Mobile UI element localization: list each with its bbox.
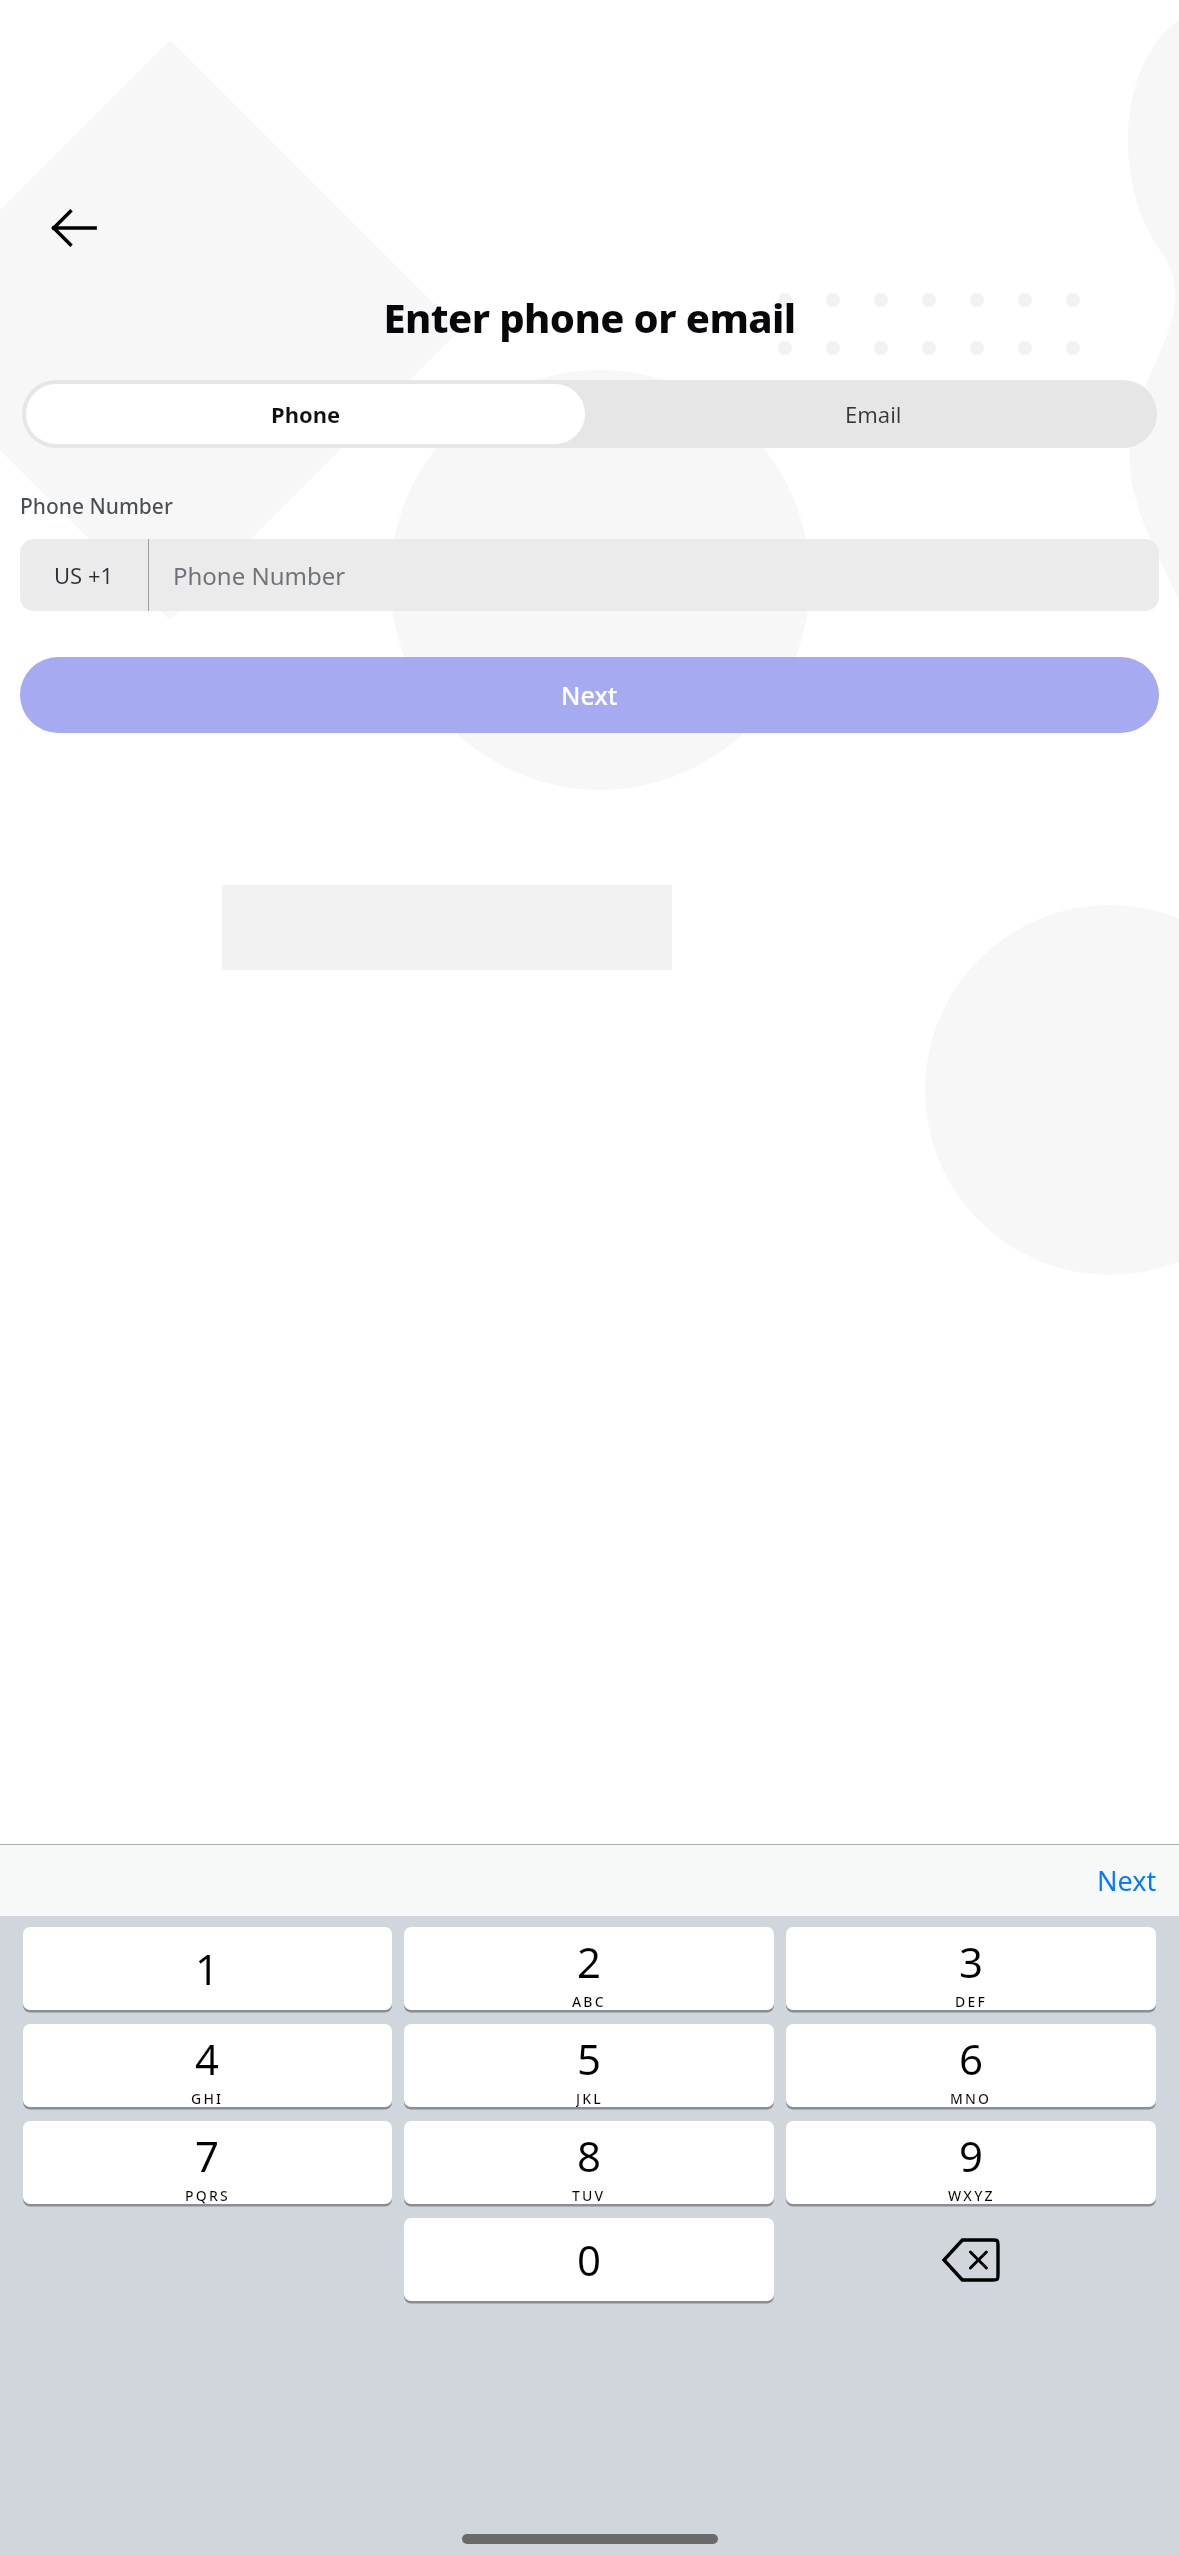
button[interactable]: 4 — [23, 2024, 392, 2107]
staticText: 2 — [577, 1933, 602, 1990]
button[interactable]: 1 — [23, 1927, 392, 2010]
button[interactable]: US +1 — [20, 539, 1159, 611]
staticText: WXYZ — [948, 2186, 995, 2204]
staticText: Next — [561, 678, 618, 712]
button[interactable]: Delete — [786, 2218, 1156, 2301]
staticText: MNO — [950, 2089, 992, 2107]
button[interactable]: 8 — [404, 2121, 774, 2204]
staticText: PQRS — [185, 2186, 230, 2204]
staticText: Email — [845, 399, 902, 429]
button[interactable]: 9 — [786, 2121, 1156, 2204]
staticText: JKL — [576, 2089, 603, 2107]
staticText: ABC — [572, 1992, 606, 2010]
button[interactable]: 0 — [404, 2218, 774, 2301]
staticText: US +1 — [54, 560, 114, 590]
staticText: 1 — [195, 1940, 220, 1997]
button[interactable]: Phone — [26, 384, 585, 444]
button[interactable]: 7 — [23, 2121, 392, 2204]
button[interactable]: 5 — [404, 2024, 774, 2107]
staticText: 0 — [577, 2231, 602, 2288]
staticText: 7 — [195, 2127, 220, 2184]
staticText: GHI — [191, 2089, 224, 2107]
staticText: 5 — [577, 2030, 602, 2087]
button[interactable]: Back — [42, 196, 106, 260]
button[interactable]: Email — [589, 380, 1157, 448]
button[interactable]: Next — [1087, 1854, 1167, 1907]
button[interactable]: 3 — [786, 1927, 1156, 2010]
staticText: Phone — [271, 399, 341, 429]
staticText: DEF — [955, 1992, 988, 2010]
staticText: Phone Number — [173, 559, 346, 592]
staticText: 9 — [959, 2127, 984, 2184]
button[interactable]: 2 — [404, 1927, 774, 2010]
button[interactable]: Next — [20, 657, 1159, 733]
staticText: Next — [1097, 1862, 1157, 1899]
staticText: TUV — [572, 2186, 606, 2204]
staticText: Phone Number — [20, 492, 173, 521]
staticText: 8 — [577, 2127, 602, 2184]
staticText: 6 — [959, 2030, 984, 2087]
staticText: 3 — [959, 1933, 984, 1990]
staticText: 4 — [195, 2030, 220, 2087]
button[interactable]: 6 — [786, 2024, 1156, 2107]
staticText: Enter phone or email — [0, 290, 1179, 344]
